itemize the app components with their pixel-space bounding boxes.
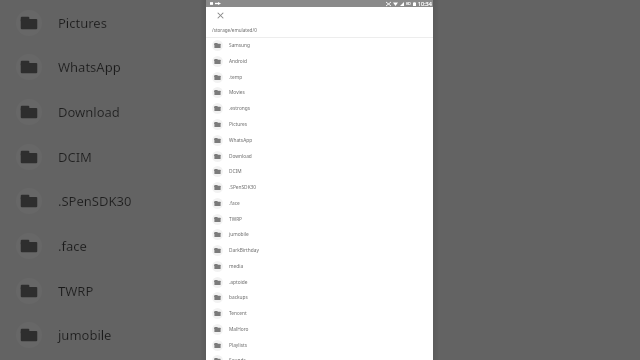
button[interactable]: MalHoro <box>206 322 433 337</box>
button[interactable]: WhatsApp <box>0 45 640 89</box>
staticText: .face <box>229 200 240 207</box>
button[interactable]: .SPenSDK30 <box>206 180 433 195</box>
button[interactable]: Pictures <box>206 117 433 132</box>
button[interactable]: jumobile <box>206 227 433 242</box>
staticText: Download <box>229 153 252 160</box>
button[interactable]: Tencent <box>206 306 433 321</box>
staticText: 10:34 <box>418 0 432 7</box>
button[interactable]: .face <box>0 224 640 268</box>
button[interactable]: .aptoide <box>206 275 433 290</box>
button[interactable]: DarkBirthday <box>206 243 433 258</box>
button[interactable]: .SPenSDK30 <box>0 179 640 223</box>
button[interactable]: TWRP <box>206 212 433 227</box>
button[interactable]: jumobile <box>0 313 640 357</box>
staticText: jumobile <box>58 326 112 344</box>
button[interactable]: .estrongs <box>206 101 433 116</box>
staticText: Sounds <box>229 357 246 360</box>
staticText: TWRP <box>58 282 94 300</box>
staticText: .temp <box>229 74 243 81</box>
staticText: Movies <box>229 89 245 96</box>
staticText: WhatsApp <box>58 58 121 76</box>
button[interactable]: media <box>206 259 433 274</box>
staticText: HD <box>406 2 411 6</box>
button[interactable]: .temp <box>206 70 433 85</box>
button[interactable]: WhatsApp <box>206 133 433 148</box>
button[interactable]: Movies <box>206 85 433 100</box>
button[interactable]: Download <box>206 149 433 164</box>
button[interactable]: Pictures <box>0 1 640 45</box>
button[interactable]: Download <box>0 90 640 134</box>
staticText: backups <box>229 294 248 301</box>
button[interactable]: Playlists <box>206 338 433 353</box>
staticText: Tencent <box>229 310 247 317</box>
staticText: TWRP <box>229 216 243 223</box>
staticText: Pictures <box>58 14 107 32</box>
staticText: MalHoro <box>229 326 249 333</box>
button[interactable]: DCIM <box>0 135 640 179</box>
staticText: .face <box>58 237 87 255</box>
staticText: Pictures <box>229 121 248 128</box>
staticText: Download <box>58 103 120 121</box>
button[interactable]: TWRP <box>0 269 640 313</box>
staticText: DCIM <box>229 168 242 175</box>
button[interactable]: Close <box>214 9 227 22</box>
staticText: WhatsApp <box>229 137 253 144</box>
staticText: Playlists <box>229 342 248 349</box>
staticText: .estrongs <box>229 105 251 112</box>
staticText: Samsung <box>229 42 250 49</box>
staticText: media <box>229 263 244 270</box>
staticText: /storage/emulated/0 <box>212 27 257 33</box>
staticText: .SPenSDK30 <box>229 184 257 191</box>
button[interactable]: Android <box>206 54 433 69</box>
button[interactable]: Sounds <box>206 353 433 360</box>
staticText: Android <box>229 58 247 65</box>
staticText: jumobile <box>229 231 249 238</box>
button[interactable]: .face <box>206 196 433 211</box>
staticText: .SPenSDK30 <box>58 192 132 210</box>
button[interactable]: DCIM <box>206 164 433 179</box>
staticText: DarkBirthday <box>229 247 259 254</box>
button[interactable]: backups <box>206 290 433 305</box>
staticText: DCIM <box>58 148 92 166</box>
staticText: .aptoide <box>229 279 248 286</box>
button[interactable]: Samsung <box>206 38 433 53</box>
